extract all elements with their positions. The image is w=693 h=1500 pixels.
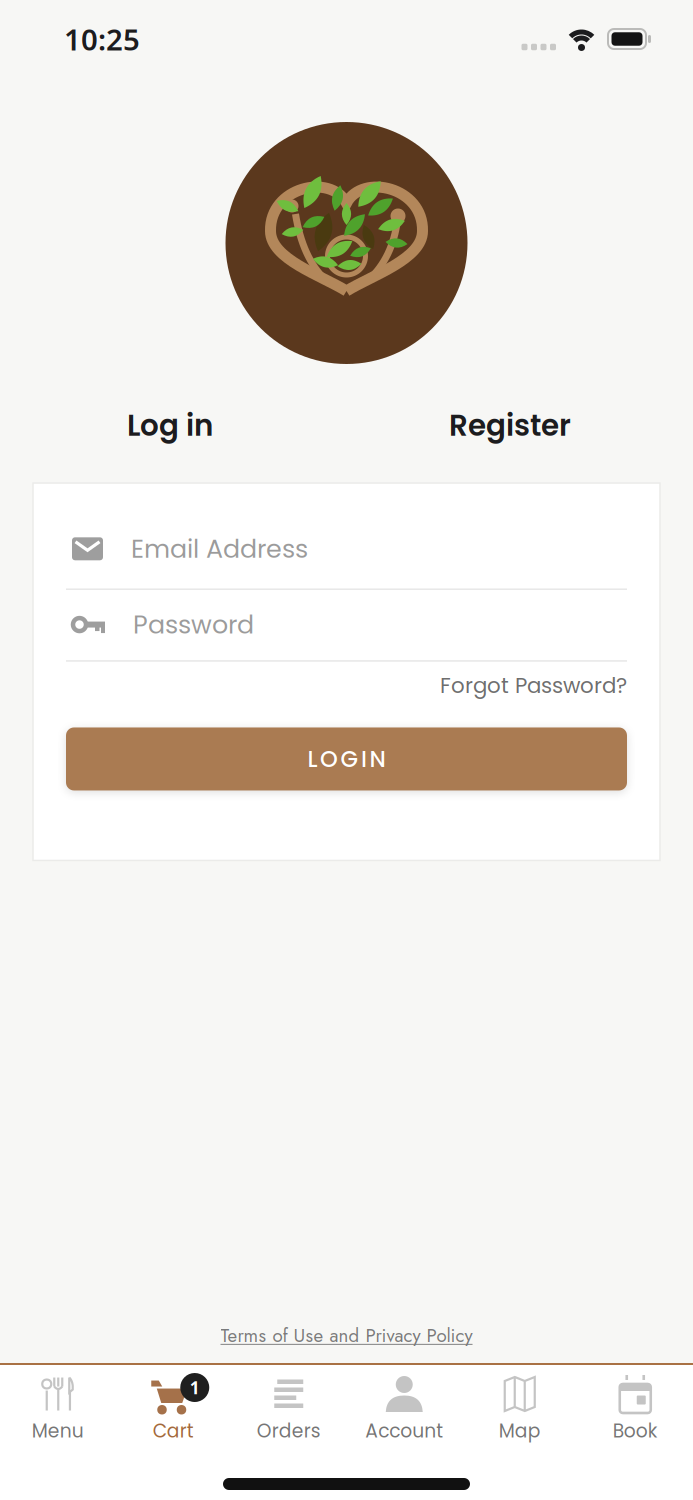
button[interactable]: Menu bbox=[0, 1373, 115, 1444]
button[interactable]: Register bbox=[340, 405, 680, 446]
button[interactable]: Password bbox=[66, 590, 627, 660]
button[interactable]: Forgot Password? bbox=[440, 671, 627, 700]
staticText: Email Address bbox=[131, 531, 308, 567]
staticText: Cart bbox=[153, 1418, 194, 1444]
button[interactable]: Log in bbox=[0, 405, 340, 446]
button[interactable]: 1 bbox=[115, 1373, 231, 1444]
staticText: LOGIN bbox=[307, 743, 385, 775]
staticText: 1 bbox=[190, 1376, 200, 1399]
staticText: Orders bbox=[257, 1418, 321, 1444]
button[interactable]: Terms of Use and Privacy Policy bbox=[220, 1322, 472, 1349]
staticText: Terms of Use and Privacy Policy bbox=[220, 1322, 472, 1349]
staticText: Register bbox=[449, 405, 571, 446]
staticText: Map bbox=[499, 1418, 541, 1444]
staticText: Account bbox=[365, 1418, 443, 1444]
staticText: Book bbox=[613, 1418, 658, 1444]
staticText: Log in bbox=[127, 405, 213, 446]
staticText: Password bbox=[133, 607, 254, 642]
staticText: Menu bbox=[32, 1418, 84, 1444]
button[interactable]: Orders bbox=[231, 1373, 346, 1444]
button[interactable]: Email Address bbox=[66, 483, 627, 589]
button[interactable]: LOGIN bbox=[66, 727, 627, 790]
button[interactable]: Map bbox=[462, 1373, 577, 1444]
staticText: Forgot Password? bbox=[440, 671, 627, 700]
button[interactable]: Book bbox=[577, 1373, 693, 1444]
staticText: 10:25 bbox=[64, 19, 140, 58]
button[interactable]: Account bbox=[346, 1373, 462, 1444]
